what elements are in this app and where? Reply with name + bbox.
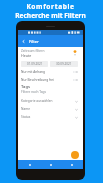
button[interactable]: Name — [21, 105, 78, 113]
staticText: Nur Beschreibung frei — [21, 78, 54, 82]
staticText: Name — [21, 107, 30, 111]
button[interactable]: Nur mit Anhang — [21, 68, 78, 76]
staticText: Nur mit Anhang — [21, 70, 46, 74]
staticText: Komfortable — [26, 2, 75, 11]
staticText: Status — [21, 115, 31, 119]
staticText: Recherche mit Filtern — [15, 11, 86, 20]
button[interactable]: Back — [20, 38, 27, 45]
staticText: 30.09.2021 — [56, 62, 72, 66]
staticText: Heute — [21, 53, 32, 58]
button[interactable]: Nur Beschreibung frei — [21, 76, 78, 84]
staticText: 01.09.2021 — [27, 62, 43, 66]
staticText: Kategorie auswählen — [21, 99, 53, 103]
button[interactable]: Status — [21, 113, 78, 121]
button[interactable]: Recents — [69, 162, 74, 167]
staticText: Zeitraum filtern — [21, 49, 45, 53]
button[interactable]: More options — [71, 49, 78, 56]
button[interactable]: Apply filters — [71, 151, 79, 159]
button[interactable]: 01.09.2021 — [21, 61, 48, 67]
button[interactable]: Kategorie auswählen — [21, 97, 78, 105]
button[interactable]: Home — [48, 162, 53, 167]
staticText: Filtere nach Tags — [21, 90, 47, 94]
staticText: Tags — [21, 84, 31, 90]
staticText: Filter — [29, 39, 39, 44]
button[interactable]: 30.09.2021 — [50, 61, 78, 67]
button[interactable]: Back — [27, 162, 32, 167]
